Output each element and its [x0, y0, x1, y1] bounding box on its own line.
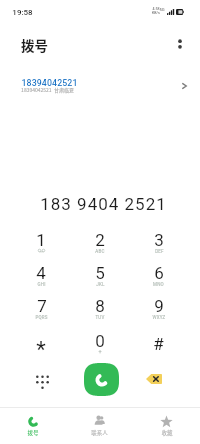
- staticText: DEF: [155, 249, 164, 254]
- staticText: 0: [95, 331, 105, 351]
- staticText: *: [36, 337, 46, 355]
- button[interactable]: More options: [170, 34, 190, 54]
- button[interactable]: 9: [129, 296, 188, 329]
- button[interactable]: 7: [12, 296, 70, 329]
- button[interactable]: 联系人: [66, 408, 133, 444]
- staticText: 19:58: [12, 8, 33, 17]
- staticText: 5: [95, 263, 105, 283]
- staticText: JKL: [96, 282, 105, 287]
- button[interactable]: Call: [84, 363, 119, 396]
- button[interactable]: 3: [129, 230, 188, 263]
- button[interactable]: 2: [70, 230, 129, 263]
- staticText: 18394042521 甘肃临夏: [21, 86, 74, 93]
- staticText: TUV: [95, 315, 105, 320]
- button[interactable]: Hide keypad: [27, 364, 57, 394]
- staticText: 4.58: [152, 7, 160, 11]
- button[interactable]: 0: [70, 329, 129, 365]
- staticText: 4: [36, 263, 46, 283]
- staticText: GHI: [37, 282, 46, 287]
- staticText: 拨号: [21, 35, 48, 55]
- staticText: 183 9404 2521: [40, 194, 167, 214]
- button[interactable]: 4: [12, 263, 70, 296]
- staticText: 2: [95, 230, 105, 250]
- staticText: 3: [154, 230, 164, 250]
- staticText: 7: [37, 296, 47, 316]
- button[interactable]: #: [129, 329, 188, 365]
- button[interactable]: 18394042521: [0, 68, 200, 98]
- staticText: MNO: [153, 282, 164, 287]
- staticText: KB/s: [152, 11, 160, 15]
- button[interactable]: Delete: [142, 369, 166, 389]
- button[interactable]: 6: [129, 263, 188, 296]
- staticText: 9: [154, 296, 164, 316]
- button[interactable]: 8: [70, 296, 129, 329]
- staticText: WXYZ: [152, 315, 166, 320]
- button[interactable]: 1: [12, 230, 70, 263]
- button[interactable]: 拨号: [0, 408, 66, 444]
- button[interactable]: 收藏: [133, 408, 200, 444]
- staticText: 1: [36, 230, 46, 250]
- button[interactable]: 5: [70, 263, 129, 296]
- staticText: ABC: [95, 249, 105, 254]
- staticText: +: [98, 348, 102, 354]
- staticText: 拨号: [27, 429, 39, 437]
- staticText: #: [153, 334, 164, 354]
- staticText: 5G: [159, 7, 165, 12]
- staticText: 收藏: [161, 429, 173, 437]
- staticText: 18394042521: [21, 78, 78, 88]
- staticText: 6: [154, 263, 164, 283]
- staticText: PQRS: [35, 315, 48, 320]
- staticText: 联系人: [91, 429, 108, 437]
- staticText: 8: [95, 296, 105, 316]
- button[interactable]: *: [12, 329, 70, 365]
